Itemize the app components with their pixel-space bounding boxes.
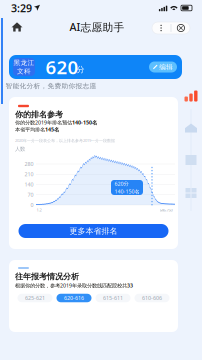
staticText: 1-2 [36,207,41,213]
staticText: 280 [24,160,33,168]
staticText: 620 [45,55,78,79]
staticText: 210 [24,171,33,178]
button[interactable]: 615-611 [95,294,130,302]
staticText: 140 [24,181,33,188]
button[interactable]: 610-606 [134,294,169,302]
button[interactable]: 更多本省排名 [18,224,168,238]
staticText: 本省平均排名145名 [15,126,59,133]
staticText: 编辑 [159,63,173,71]
staticText: 根据你的分数，参考2019年录取分数线匹配院校共33 [15,282,133,289]
staticText: 615-611 [103,294,123,302]
button[interactable]: 625-621 [17,294,52,302]
staticText: 文科 [17,67,31,75]
staticText: 0 [30,201,33,209]
staticText: 70 [27,191,33,198]
button[interactable]: Close [171,22,190,34]
staticText: 620分 [114,180,128,187]
staticText: 2020年一分一段表公布，以上排名参考2019一分一段数据 [15,138,115,143]
button[interactable]: More [152,22,171,34]
staticText: 人数 [15,146,25,152]
staticText: 620-616 [64,294,84,302]
staticText: 智能化分析，免费助你报志愿 [5,82,96,90]
button[interactable]: Home [6,18,28,36]
staticText: 你的排名参考 [15,110,63,119]
staticText: 你的分数2019年排名预估140-150名 [15,119,97,126]
staticText: 黑龙江 [13,59,34,67]
staticText: AI志愿助手 [69,20,124,34]
button[interactable]: 620-616 [56,294,91,302]
button[interactable]: 编辑 [149,61,177,72]
staticText: 625-621 [25,294,45,302]
staticText: 646-750 [159,207,172,213]
staticText: 更多本省排名 [69,226,117,236]
staticText: 3:29 [11,1,32,15]
staticText: 610-606 [142,294,162,302]
staticText: 140-150名 [114,188,139,195]
staticText: 往年报考情况分析 [15,272,79,281]
staticText: 分 [76,65,84,74]
